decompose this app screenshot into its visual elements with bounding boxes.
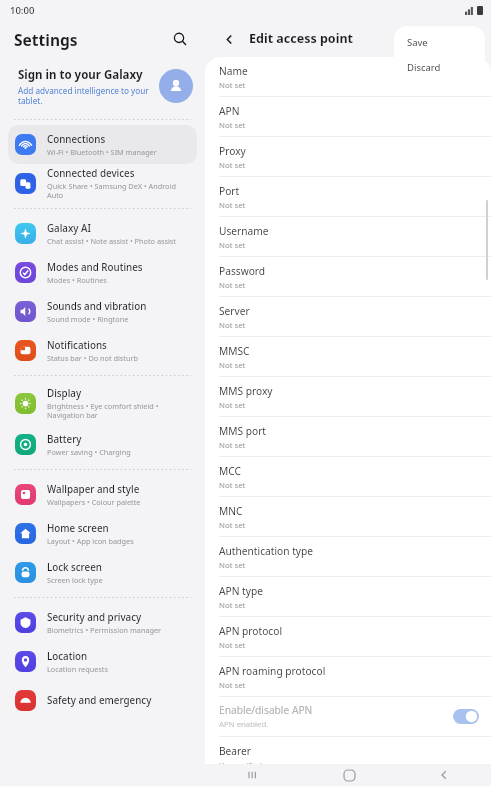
button[interactable]: Lock screen (8, 553, 197, 592)
button[interactable]: Enable/disable APN (205, 697, 491, 736)
button[interactable]: Galaxy AI (8, 214, 197, 253)
staticText: Display (47, 387, 82, 400)
staticText: Quick Share • Samsung DeX • Android Auto (47, 181, 191, 200)
staticText: Not set (219, 640, 246, 651)
button[interactable]: Recent apps (240, 764, 266, 786)
button[interactable]: Security and privacy (8, 603, 197, 642)
staticText: Bearer (219, 744, 252, 758)
staticText: Lock screen (47, 561, 102, 574)
staticText: Not set (219, 440, 246, 451)
button[interactable]: APN roaming protocol (205, 657, 491, 696)
staticText: Add advanced intelligence to your tablet… (18, 85, 151, 106)
button[interactable]: Location (8, 642, 197, 681)
button[interactable]: Back (219, 29, 239, 49)
button[interactable]: Notifications (8, 331, 197, 370)
button[interactable]: Battery (8, 425, 197, 464)
staticText: Location (47, 650, 88, 663)
button[interactable]: Modes and Routines (8, 253, 197, 292)
staticText: MMSC (219, 344, 250, 358)
button[interactable]: Save (394, 30, 485, 55)
button[interactable]: MNC (205, 497, 491, 536)
staticText: Server (219, 304, 250, 318)
staticText: Settings (14, 29, 78, 50)
button[interactable]: MCC (205, 457, 491, 496)
staticText: APN protocol (219, 624, 283, 638)
staticText: Not set (219, 480, 246, 491)
button[interactable]: Display (8, 381, 197, 425)
button[interactable]: MMSC (205, 337, 491, 376)
staticText: Not set (219, 80, 246, 91)
button[interactable]: Proxy (205, 137, 491, 176)
button[interactable]: Wallpaper and style (8, 475, 197, 514)
staticText: MMS port (219, 424, 267, 438)
button[interactable]: Sign in to your Galaxy (0, 58, 205, 114)
button[interactable]: Password (205, 257, 491, 296)
staticText: Not set (219, 280, 246, 291)
staticText: Battery (47, 433, 82, 446)
staticText: Connected devices (47, 167, 135, 180)
staticText: Notifications (47, 339, 107, 352)
staticText: Not set (219, 240, 246, 251)
button[interactable]: APN (205, 97, 491, 136)
staticText: MCC (219, 464, 241, 478)
button[interactable]: Username (205, 217, 491, 256)
button[interactable]: Safety and emergency (8, 681, 197, 720)
button[interactable]: Name (205, 57, 491, 96)
button[interactable]: Search (167, 26, 193, 52)
button[interactable]: Bearer (205, 737, 491, 764)
staticText: Not set (219, 560, 246, 571)
button[interactable]: Home screen (8, 514, 197, 553)
staticText: Not set (219, 200, 246, 211)
staticText: APN roaming protocol (219, 664, 326, 678)
staticText: Not set (219, 320, 246, 331)
button[interactable]: APN type (205, 577, 491, 616)
staticText: Not set (219, 400, 246, 411)
staticText: Not set (219, 520, 246, 531)
staticText: Home screen (47, 522, 109, 535)
button[interactable]: APN protocol (205, 617, 491, 656)
staticText: Galaxy AI (47, 222, 91, 235)
staticText: APN (219, 104, 240, 118)
staticText: Wi-Fi • Bluetooth • SIM manager (47, 147, 157, 157)
staticText: Save (407, 36, 428, 49)
staticText: Sound mode • Ringtone (47, 314, 129, 324)
staticText: Security and privacy (47, 611, 142, 624)
staticText: Not set (219, 600, 246, 611)
staticText: MNC (219, 504, 243, 518)
staticText: APN enabled. (219, 719, 269, 730)
button[interactable]: Server (205, 297, 491, 336)
staticText: Connections (47, 133, 106, 146)
staticText: Not set (219, 120, 246, 131)
staticText: Wallpapers • Colour palette (47, 497, 141, 507)
staticText: Proxy (219, 144, 246, 158)
staticText: Name (219, 64, 248, 78)
staticText: Brightness • Eye comfort shield • Naviga… (47, 401, 191, 420)
button[interactable]: Connections (8, 125, 197, 164)
staticText: Edit access point (249, 30, 353, 47)
staticText: Port (219, 184, 240, 198)
button[interactable]: Authentication type (205, 537, 491, 576)
staticText: Chat assist • Note assist • Photo assist (47, 236, 177, 246)
button[interactable]: Home (336, 764, 362, 786)
staticText: Screen lock type (47, 575, 103, 585)
button[interactable]: Discard (394, 55, 485, 80)
staticText: Unspecified (219, 760, 263, 764)
button[interactable]: Port (205, 177, 491, 216)
staticText: MMS proxy (219, 384, 273, 398)
button[interactable]: MMS proxy (205, 377, 491, 416)
button[interactable]: Sounds and vibration (8, 292, 197, 331)
staticText: Not set (219, 360, 246, 371)
button[interactable]: Connected devices (8, 164, 197, 203)
staticText: Username (219, 224, 269, 238)
staticText: Modes • Routines (47, 275, 107, 285)
staticText: Sign in to your Galaxy (18, 67, 143, 83)
staticText: Safety and emergency (47, 694, 152, 707)
button[interactable]: Back (431, 764, 457, 786)
staticText: Authentication type (219, 544, 314, 558)
staticText: Location requests (47, 664, 108, 674)
staticText: Not set (219, 160, 246, 171)
staticText: Modes and Routines (47, 261, 143, 274)
staticText: Not set (219, 680, 246, 691)
button[interactable]: MMS port (205, 417, 491, 456)
staticText: Discard (407, 61, 441, 74)
